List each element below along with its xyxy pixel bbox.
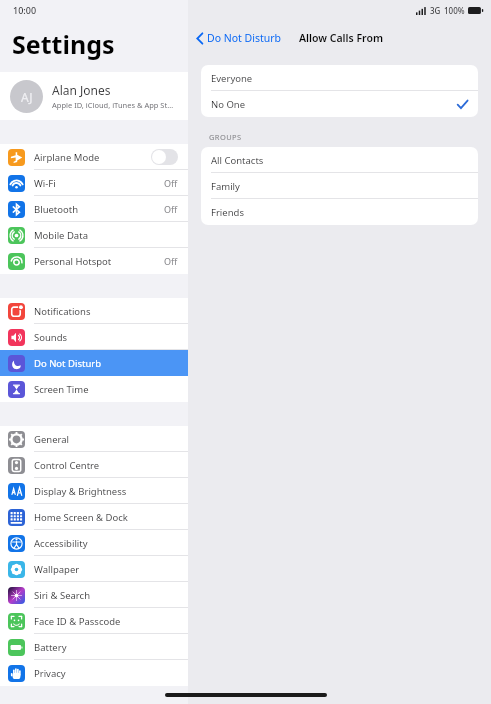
button[interactable]: Display & Brightness — [0, 478, 188, 504]
button[interactable]: Privacy — [0, 660, 188, 686]
button[interactable]: Sounds — [0, 324, 188, 350]
button[interactable]: No One — [201, 91, 478, 117]
staticText: 10:00 — [13, 4, 37, 16]
staticText: GROUPS — [209, 132, 242, 142]
staticText: General — [34, 433, 70, 446]
staticText: No One — [211, 98, 246, 111]
button[interactable]: General — [0, 426, 188, 452]
button[interactable]: AJ — [0, 72, 188, 120]
staticText: Privacy — [34, 667, 66, 680]
staticText: 3G — [430, 5, 441, 16]
button[interactable]: Airplane Mode toggle, off — [151, 149, 178, 165]
staticText: Alan Jones — [52, 82, 111, 98]
staticText: Off — [164, 177, 178, 189]
button[interactable]: Screen Time — [0, 376, 188, 402]
staticText: Settings — [12, 27, 115, 61]
staticText: Bluetooth — [34, 203, 79, 216]
staticText: Personal Hotspot — [34, 255, 112, 268]
button[interactable]: Notifications — [0, 298, 188, 324]
button[interactable]: Wi-Fi — [0, 170, 188, 196]
staticText: Display & Brightness — [34, 485, 127, 498]
button[interactable]: Airplane Mode — [0, 144, 188, 170]
button[interactable]: Family — [201, 173, 478, 199]
button[interactable]: Do Not Disturb — [0, 350, 188, 376]
staticText: Off — [164, 203, 178, 215]
staticText: AJ — [21, 89, 33, 105]
staticText: Friends — [211, 206, 244, 219]
staticText: Siri & Search — [34, 589, 91, 602]
button[interactable]: Battery — [0, 634, 188, 660]
staticText: Accessibility — [34, 537, 88, 550]
staticText: Everyone — [211, 72, 253, 85]
staticText: Do Not Disturb — [207, 31, 282, 45]
staticText: Apple ID, iCloud, iTunes & App St… — [52, 100, 174, 110]
staticText: Do Not Disturb — [34, 357, 102, 370]
staticText: Sounds — [34, 331, 68, 344]
staticText: Mobile Data — [34, 229, 88, 242]
button[interactable]: Home Screen & Dock — [0, 504, 188, 530]
button[interactable]: Siri & Search — [0, 582, 188, 608]
staticText: All Contacts — [211, 154, 264, 167]
button[interactable]: Friends — [201, 199, 478, 225]
staticText: Face ID & Passcode — [34, 615, 121, 628]
button[interactable]: Do Not Disturb — [196, 31, 282, 45]
button[interactable]: Bluetooth — [0, 196, 188, 222]
staticText: Off — [164, 255, 178, 267]
staticText: Control Centre — [34, 459, 100, 472]
button[interactable]: Everyone — [201, 65, 478, 91]
button[interactable]: Face ID & Passcode — [0, 608, 188, 634]
staticText: Screen Time — [34, 383, 89, 396]
staticText: Battery — [34, 641, 67, 654]
staticText: Home Screen & Dock — [34, 511, 128, 524]
staticText: Wi-Fi — [34, 177, 56, 190]
button[interactable]: All Contacts — [201, 147, 478, 173]
button[interactable]: Personal Hotspot — [0, 248, 188, 274]
staticText: Airplane Mode — [34, 151, 100, 164]
button[interactable]: Accessibility — [0, 530, 188, 556]
button[interactable]: Mobile Data — [0, 222, 188, 248]
button[interactable]: Wallpaper — [0, 556, 188, 582]
staticText: Family — [211, 180, 240, 193]
staticText: Allow Calls From — [299, 31, 383, 45]
button[interactable]: Control Centre — [0, 452, 188, 478]
staticText: Notifications — [34, 305, 91, 318]
staticText: 100% — [444, 5, 465, 16]
staticText: Wallpaper — [34, 563, 80, 576]
